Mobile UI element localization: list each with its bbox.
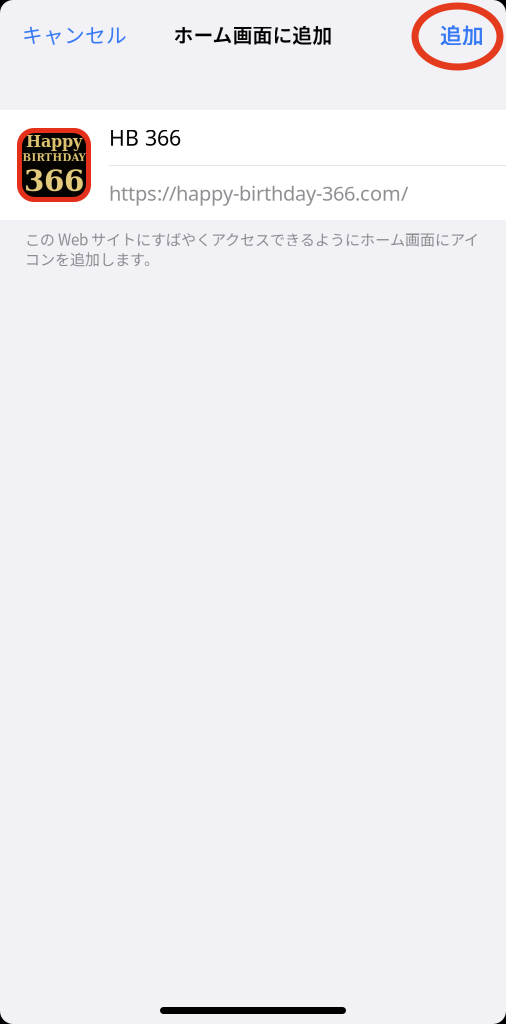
staticText: キャンセル	[22, 19, 127, 49]
staticText: この Web サイトにすばやくアクセスできるようにホーム画面にアイコンを追加しま…	[25, 228, 479, 270]
staticText: BIRTHDAY	[22, 152, 85, 164]
button[interactable]: キャンセル	[0, 5, 145, 63]
staticText: HB 366	[109, 123, 181, 152]
staticText: 366	[24, 164, 84, 198]
button[interactable]: 追加	[422, 4, 506, 64]
staticText: 追加	[440, 18, 484, 50]
staticText: ホーム画面に追加	[173, 20, 332, 48]
staticText: https://happy-birthday-366.com/	[109, 180, 408, 206]
staticText: Happy	[26, 132, 82, 151]
